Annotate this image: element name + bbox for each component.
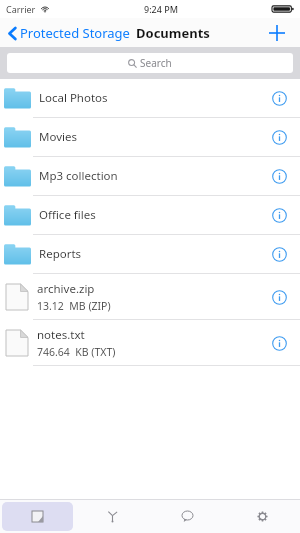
button[interactable]: archive.zip — [0, 274, 300, 320]
staticText: 13.12 MB (ZIP) — [37, 299, 111, 313]
staticText: Movies — [39, 129, 77, 145]
button[interactable]: More info — [264, 328, 294, 358]
button[interactable]: More info — [264, 161, 294, 191]
button[interactable]: Files — [2, 502, 73, 531]
staticText: Reports — [39, 246, 82, 262]
staticText: 746.64 KB (TXT) — [37, 345, 116, 359]
staticText: Documents — [136, 24, 210, 42]
button[interactable]: Transfers — [77, 502, 148, 531]
button[interactable]: notes.txt — [0, 320, 300, 366]
button[interactable]: More info — [264, 122, 294, 152]
button[interactable]: More info — [264, 200, 294, 230]
button[interactable]: More info — [264, 239, 294, 269]
button[interactable]: Settings — [227, 502, 298, 531]
staticText: notes.txt — [37, 327, 85, 343]
button[interactable]: More info — [264, 282, 294, 312]
button[interactable]: Movies — [0, 118, 300, 157]
button[interactable]: Search — [7, 53, 293, 73]
button[interactable]: Mp3 collection — [0, 157, 300, 196]
staticText: Search — [140, 56, 172, 70]
staticText: Office files — [39, 207, 96, 223]
staticText: Carrier — [6, 3, 36, 15]
staticText: Protected Storage — [20, 24, 130, 42]
staticText: Mp3 collection — [39, 168, 118, 184]
staticText: archive.zip — [37, 281, 95, 297]
button[interactable]: Reports — [0, 235, 300, 274]
button[interactable]: More info — [264, 83, 294, 113]
button[interactable]: Protected Storage — [6, 21, 132, 45]
button[interactable]: Add — [264, 20, 290, 46]
staticText: 9:24 PM — [144, 3, 178, 15]
button[interactable]: Messages — [152, 502, 223, 531]
staticText: Local Photos — [39, 90, 108, 106]
button[interactable]: Local Photos — [0, 79, 300, 118]
button[interactable]: Office files — [0, 196, 300, 235]
